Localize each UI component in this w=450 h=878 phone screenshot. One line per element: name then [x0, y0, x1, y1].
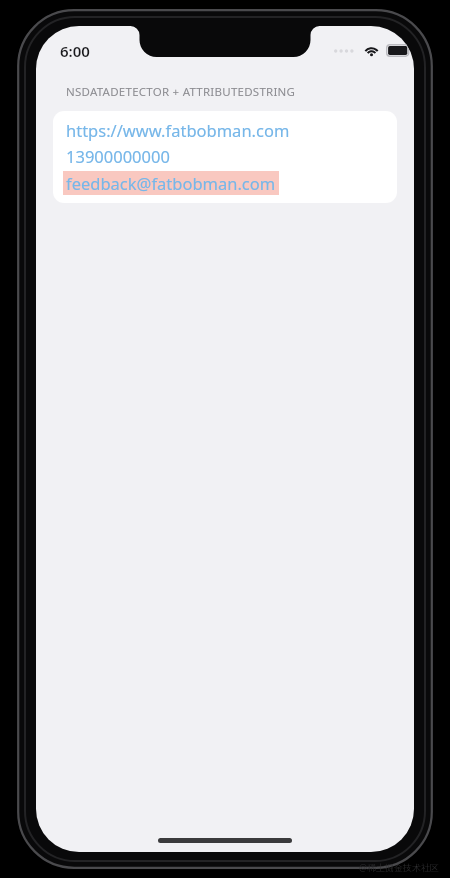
button[interactable]: https://www.fatbobman.com	[53, 111, 397, 203]
button[interactable]: feedback@fatbobman.com	[63, 171, 279, 195]
staticText: feedback@fatbobman.com	[66, 172, 276, 194]
staticText: 6:00	[60, 41, 90, 61]
button[interactable]: 13900000000	[66, 145, 170, 167]
button[interactable]: https://www.fatbobman.com	[66, 119, 290, 141]
staticText: @稀土掘金技术社区	[359, 861, 440, 873]
staticText: NSDATADETECTOR + ATTRIBUTEDSTRING	[66, 84, 296, 100]
